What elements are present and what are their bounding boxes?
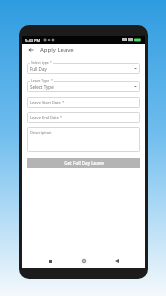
button[interactable]: Leave Start Date [27, 97, 140, 108]
staticText: Description [30, 130, 52, 135]
staticText: Leave Type [31, 78, 50, 83]
staticText: Get Full Day Leave [64, 160, 104, 166]
button[interactable]: Leave End Date [27, 112, 140, 123]
staticText: * [50, 78, 53, 83]
staticText: Full Day [30, 66, 47, 72]
staticText: Select Type [30, 84, 54, 90]
button[interactable]: Full Day [27, 60, 140, 74]
button[interactable]: Back [26, 45, 36, 55]
staticText: * [49, 60, 52, 65]
staticText: * [59, 115, 63, 120]
button[interactable]: Select Type [27, 78, 140, 92]
button[interactable]: Home [79, 256, 89, 266]
staticText: Leave End Date [30, 115, 59, 120]
staticText: Apply Leave [40, 46, 74, 54]
staticText: Leave Start Date [30, 100, 61, 105]
button[interactable]: Get Full Day Leave [27, 158, 140, 168]
button[interactable]: Recent apps [45, 256, 55, 266]
button[interactable]: Back [112, 256, 122, 266]
button[interactable]: Description [27, 127, 140, 152]
staticText: * [61, 100, 65, 105]
staticText: Select type [31, 60, 49, 65]
staticText: 5:43 PM [25, 38, 41, 43]
